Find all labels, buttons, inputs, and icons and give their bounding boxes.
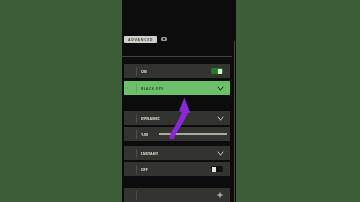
button[interactable]: Info (161, 37, 167, 41)
button[interactable]: INSTANT (124, 146, 230, 160)
button[interactable]: DYNAMIC (124, 111, 230, 125)
staticText: OFF (141, 167, 148, 172)
staticText: ON (141, 69, 147, 74)
staticText: INSTANT (141, 151, 159, 156)
staticText: 1.00 (141, 132, 149, 137)
staticText: BLACK OPS (141, 86, 164, 91)
button[interactable]: BLACK OPS (124, 81, 230, 95)
button[interactable]: 1.00 (124, 127, 230, 141)
button[interactable]: ON (124, 64, 230, 78)
staticText: DYNAMIC (141, 116, 161, 121)
button[interactable]: ADVANCED (124, 36, 157, 43)
button[interactable]: OFF (124, 162, 230, 176)
staticText: ADVANCED (128, 37, 154, 42)
button[interactable]: Add (124, 188, 230, 202)
